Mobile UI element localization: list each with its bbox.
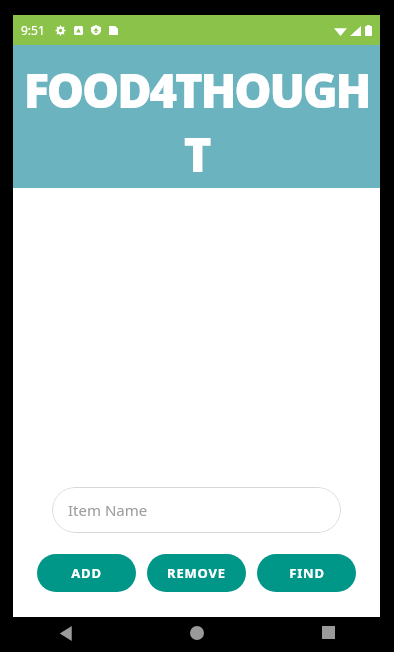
button[interactable]: FIND — [257, 554, 356, 592]
staticText: 9:51 — [21, 22, 45, 38]
button[interactable]: Home — [180, 626, 214, 652]
button[interactable]: REMOVE — [147, 554, 246, 592]
staticText: FOOD4THOUGHT — [13, 58, 380, 186]
button[interactable]: Recent apps — [311, 626, 345, 652]
button[interactable]: Back — [49, 626, 83, 652]
staticText: FIND — [289, 564, 325, 582]
staticText: ADD — [71, 564, 102, 582]
staticText: REMOVE — [167, 564, 226, 582]
button[interactable]: Item Name — [52, 487, 341, 533]
staticText: Item Name — [68, 500, 148, 520]
button[interactable]: ADD — [37, 554, 136, 592]
